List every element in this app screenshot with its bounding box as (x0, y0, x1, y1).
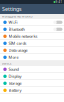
staticText: Battery (8, 88, 21, 93)
staticText: Settings (2, 5, 22, 13)
staticText: WIRELESS & NETWORKS (2, 15, 32, 18)
staticText: Sound (8, 67, 18, 72)
button[interactable]: Sound (0, 66, 64, 73)
button[interactable]: Display (0, 73, 64, 80)
staticText: Display (8, 74, 21, 79)
button[interactable]: SIM cards (0, 40, 64, 47)
staticText: Data usage (8, 48, 27, 53)
staticText: DEVICE (2, 62, 11, 65)
staticText: Mobile networks (8, 34, 37, 39)
button[interactable]: Mobile networks (0, 33, 64, 40)
button[interactable]: Data usage (0, 47, 64, 54)
staticText: Storage (8, 81, 21, 86)
button[interactable]: More (0, 54, 64, 61)
staticText: Wi-Fi (8, 20, 17, 25)
staticText: More (8, 55, 18, 60)
staticText: Bluetooth (8, 27, 24, 32)
button[interactable]: Battery (0, 87, 64, 94)
button[interactable]: Wi-Fi (0, 19, 64, 26)
staticText: 9:41 (55, 0, 62, 4)
button[interactable]: Storage (0, 80, 64, 87)
button[interactable]: Bluetooth (0, 26, 64, 33)
staticText: SIM cards (8, 41, 26, 46)
